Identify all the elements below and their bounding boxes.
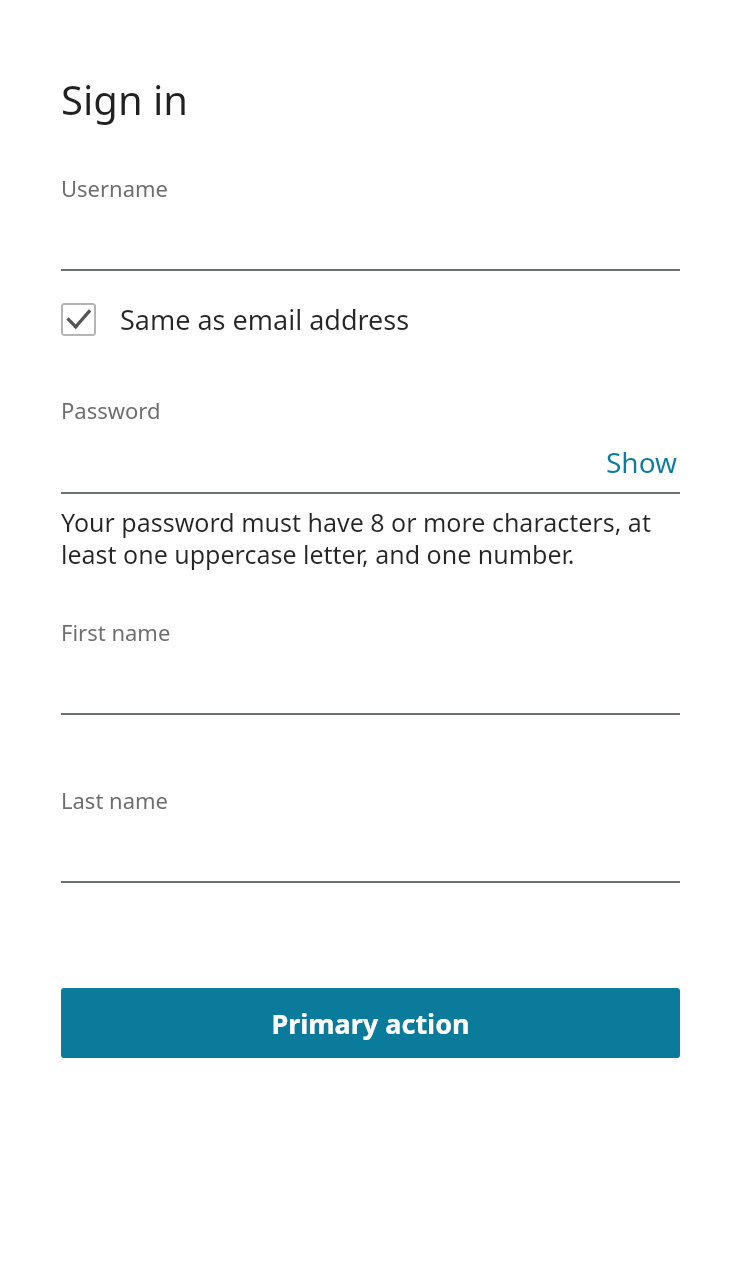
staticText: Same as email address xyxy=(120,301,410,338)
staticText: Primary action xyxy=(271,1005,470,1042)
button[interactable]: Show xyxy=(604,441,680,483)
staticText: Password xyxy=(61,395,161,425)
button[interactable]: Primary action xyxy=(61,988,680,1058)
staticText: Last name xyxy=(61,785,168,815)
staticText: Username xyxy=(61,173,169,203)
button[interactable]: Same as email address xyxy=(61,301,680,338)
staticText: Sign in xyxy=(61,72,189,126)
staticText: Your password must have 8 or more charac… xyxy=(61,505,680,571)
staticText: Show xyxy=(606,443,678,481)
staticText: First name xyxy=(61,617,171,647)
